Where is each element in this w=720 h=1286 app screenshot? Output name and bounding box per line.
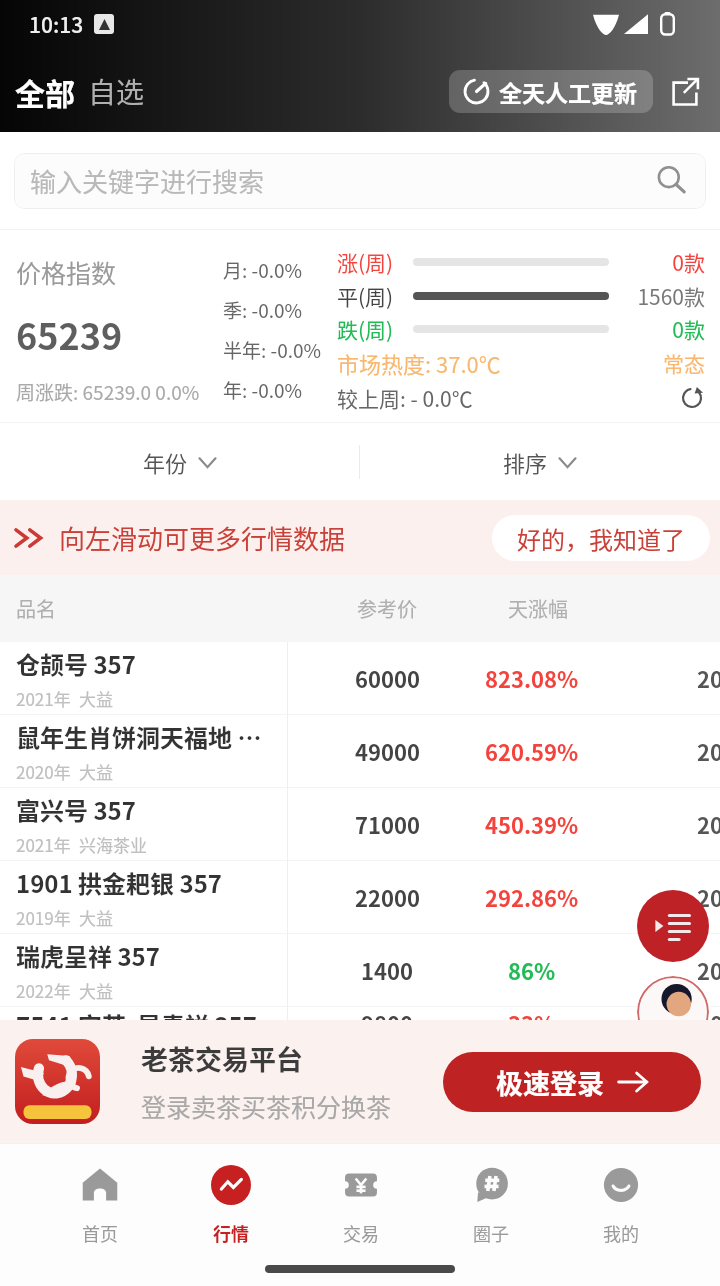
staticText: 大益: [79, 686, 113, 711]
staticText: 1901 拱金耙银 357: [16, 865, 223, 900]
staticText: 大益: [79, 759, 113, 784]
staticText: 33%: [508, 1007, 556, 1020]
staticText: 交易: [343, 1220, 379, 1246]
button[interactable]: 排序: [360, 423, 720, 500]
staticText: 65239: [16, 308, 123, 360]
staticText: 我的: [603, 1220, 639, 1246]
staticText: 极速登录: [496, 1063, 604, 1102]
staticText: 10:13: [29, 9, 84, 39]
staticText: 周涨跌: 65239.0 0.0%: [16, 378, 200, 406]
staticText: 620.59%: [485, 735, 579, 767]
button[interactable]: 自选: [88, 71, 145, 112]
staticText: 行情: [213, 1220, 249, 1246]
button[interactable]: 全部: [15, 70, 75, 113]
staticText: 20: [697, 662, 720, 694]
button[interactable]: 富兴号 357: [0, 788, 720, 860]
button[interactable]: 极速登录: [443, 1052, 701, 1112]
staticText: 292.86%: [485, 881, 579, 913]
staticText: 平(周): [337, 281, 413, 311]
button[interactable]: 圈子: [426, 1144, 556, 1252]
staticText: 参考价: [357, 594, 417, 623]
staticText: 市场热度: 37.0℃: [337, 347, 501, 379]
staticText: 老茶交易平台: [141, 1039, 303, 1078]
staticText: 49000: [355, 735, 420, 767]
staticText: 季: -0.0%: [223, 296, 303, 324]
staticText: 常态: [663, 348, 705, 378]
staticText: 跌(周): [337, 314, 413, 344]
staticText: 瑞虎呈祥 357: [16, 938, 160, 973]
staticText: 2021年: [16, 686, 71, 711]
staticText: 年: -0.0%: [223, 376, 303, 404]
staticText: 全天人工更新: [499, 75, 637, 108]
staticText: 富兴号 357: [16, 792, 136, 827]
staticText: 7541 宫茶 昱青祥 357: [16, 1007, 257, 1020]
staticText: 823.08%: [485, 662, 579, 694]
button[interactable]: 年份: [0, 423, 359, 500]
staticText: 价格指数: [16, 254, 117, 290]
staticText: 450.39%: [485, 808, 579, 840]
staticText: 2022年: [16, 978, 71, 1003]
staticText: 大益: [79, 978, 113, 1003]
staticText: 9800: [361, 1007, 413, 1020]
staticText: 20: [697, 735, 720, 767]
button[interactable]: 交易: [296, 1144, 426, 1252]
staticText: 登录卖茶买茶积分换茶: [141, 1088, 392, 1124]
staticText: 0款: [672, 314, 705, 344]
staticText: 20: [697, 808, 720, 840]
button[interactable]: 鼠年生肖饼洞天福地 …: [0, 715, 720, 787]
staticText: 年份: [143, 446, 188, 478]
staticText: 71000: [355, 808, 420, 840]
staticText: 兴海茶业: [79, 832, 147, 857]
staticText: 好的，我知道了: [517, 521, 685, 556]
staticText: 天涨幅: [508, 594, 568, 623]
staticText: 2021年: [16, 832, 71, 857]
staticText: 首页: [82, 1220, 118, 1246]
staticText: 1560款: [637, 281, 705, 311]
staticText: 20: [697, 1007, 720, 1020]
staticText: 鼠年生肖饼洞天福地 …: [16, 719, 262, 754]
staticText: 86%: [508, 954, 556, 986]
staticText: 较上周: - 0.0℃: [337, 383, 473, 413]
staticText: 输入关键字进行搜索: [30, 162, 265, 200]
staticText: 半年: -0.0%: [223, 336, 322, 364]
staticText: 22000: [355, 881, 420, 913]
staticText: 向左滑动可更多行情数据: [59, 519, 346, 557]
button[interactable]: 客服: [637, 976, 709, 1048]
button[interactable]: 7541 宫茶 昱青祥 357: [0, 1007, 720, 1020]
staticText: 60000: [355, 662, 420, 694]
button[interactable]: 输入关键字进行搜索: [14, 153, 706, 209]
staticText: 0款: [672, 247, 705, 277]
button[interactable]: 首页: [34, 1144, 165, 1252]
button[interactable]: 行情播报: [637, 890, 709, 962]
button[interactable]: 全天人工更新: [449, 70, 653, 113]
button[interactable]: 行情: [165, 1144, 296, 1252]
button[interactable]: 1901 拱金耙银 357: [0, 861, 720, 933]
staticText: 2019年: [16, 905, 71, 930]
staticText: 涨(周): [337, 247, 413, 277]
staticText: 月: -0.0%: [223, 256, 303, 284]
staticText: 大益: [79, 905, 113, 930]
button[interactable]: 仓颉号 357: [0, 642, 720, 714]
staticText: 20: [697, 954, 720, 986]
staticText: 仓颉号 357: [16, 646, 136, 681]
button[interactable]: 分享: [659, 65, 711, 117]
staticText: 圈子: [473, 1220, 509, 1246]
staticText: 20: [697, 881, 720, 913]
button[interactable]: 好的，我知道了: [492, 515, 710, 561]
staticText: 品名: [16, 594, 56, 623]
button[interactable]: 我的: [556, 1144, 686, 1252]
staticText: 1400: [361, 954, 413, 986]
button[interactable]: 刷新: [679, 385, 705, 411]
button[interactable]: 瑞虎呈祥 357: [0, 934, 720, 1006]
staticText: 排序: [503, 446, 548, 478]
staticText: 2020年: [16, 759, 71, 784]
